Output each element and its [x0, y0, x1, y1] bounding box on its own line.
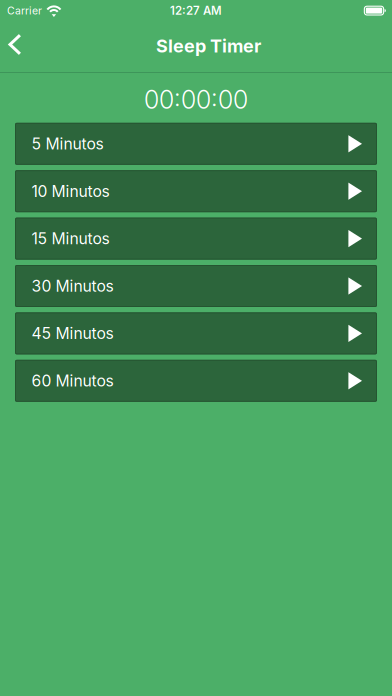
button[interactable]: 30 Minutos: [15, 265, 377, 307]
staticText: 10 Minutos: [31, 182, 109, 201]
staticText: 60 Minutos: [31, 371, 113, 390]
staticText: 12:27 AM: [170, 4, 222, 18]
button[interactable]: 5 Minutos: [15, 123, 377, 165]
button[interactable]: 15 Minutos: [15, 218, 377, 260]
staticText: Sleep Timer: [156, 35, 261, 57]
staticText: 30 Minutos: [31, 276, 113, 295]
button[interactable]: 60 Minutos: [15, 360, 377, 402]
button[interactable]: Back: [0, 24, 56, 68]
staticText: 15 Minutos: [31, 229, 109, 248]
staticText: 00:00:00: [144, 85, 248, 115]
staticText: 5 Minutos: [31, 134, 103, 153]
button[interactable]: 10 Minutos: [15, 170, 377, 212]
staticText: Carrier: [7, 4, 42, 17]
staticText: 45 Minutos: [31, 324, 113, 343]
button[interactable]: 45 Minutos: [15, 312, 377, 354]
